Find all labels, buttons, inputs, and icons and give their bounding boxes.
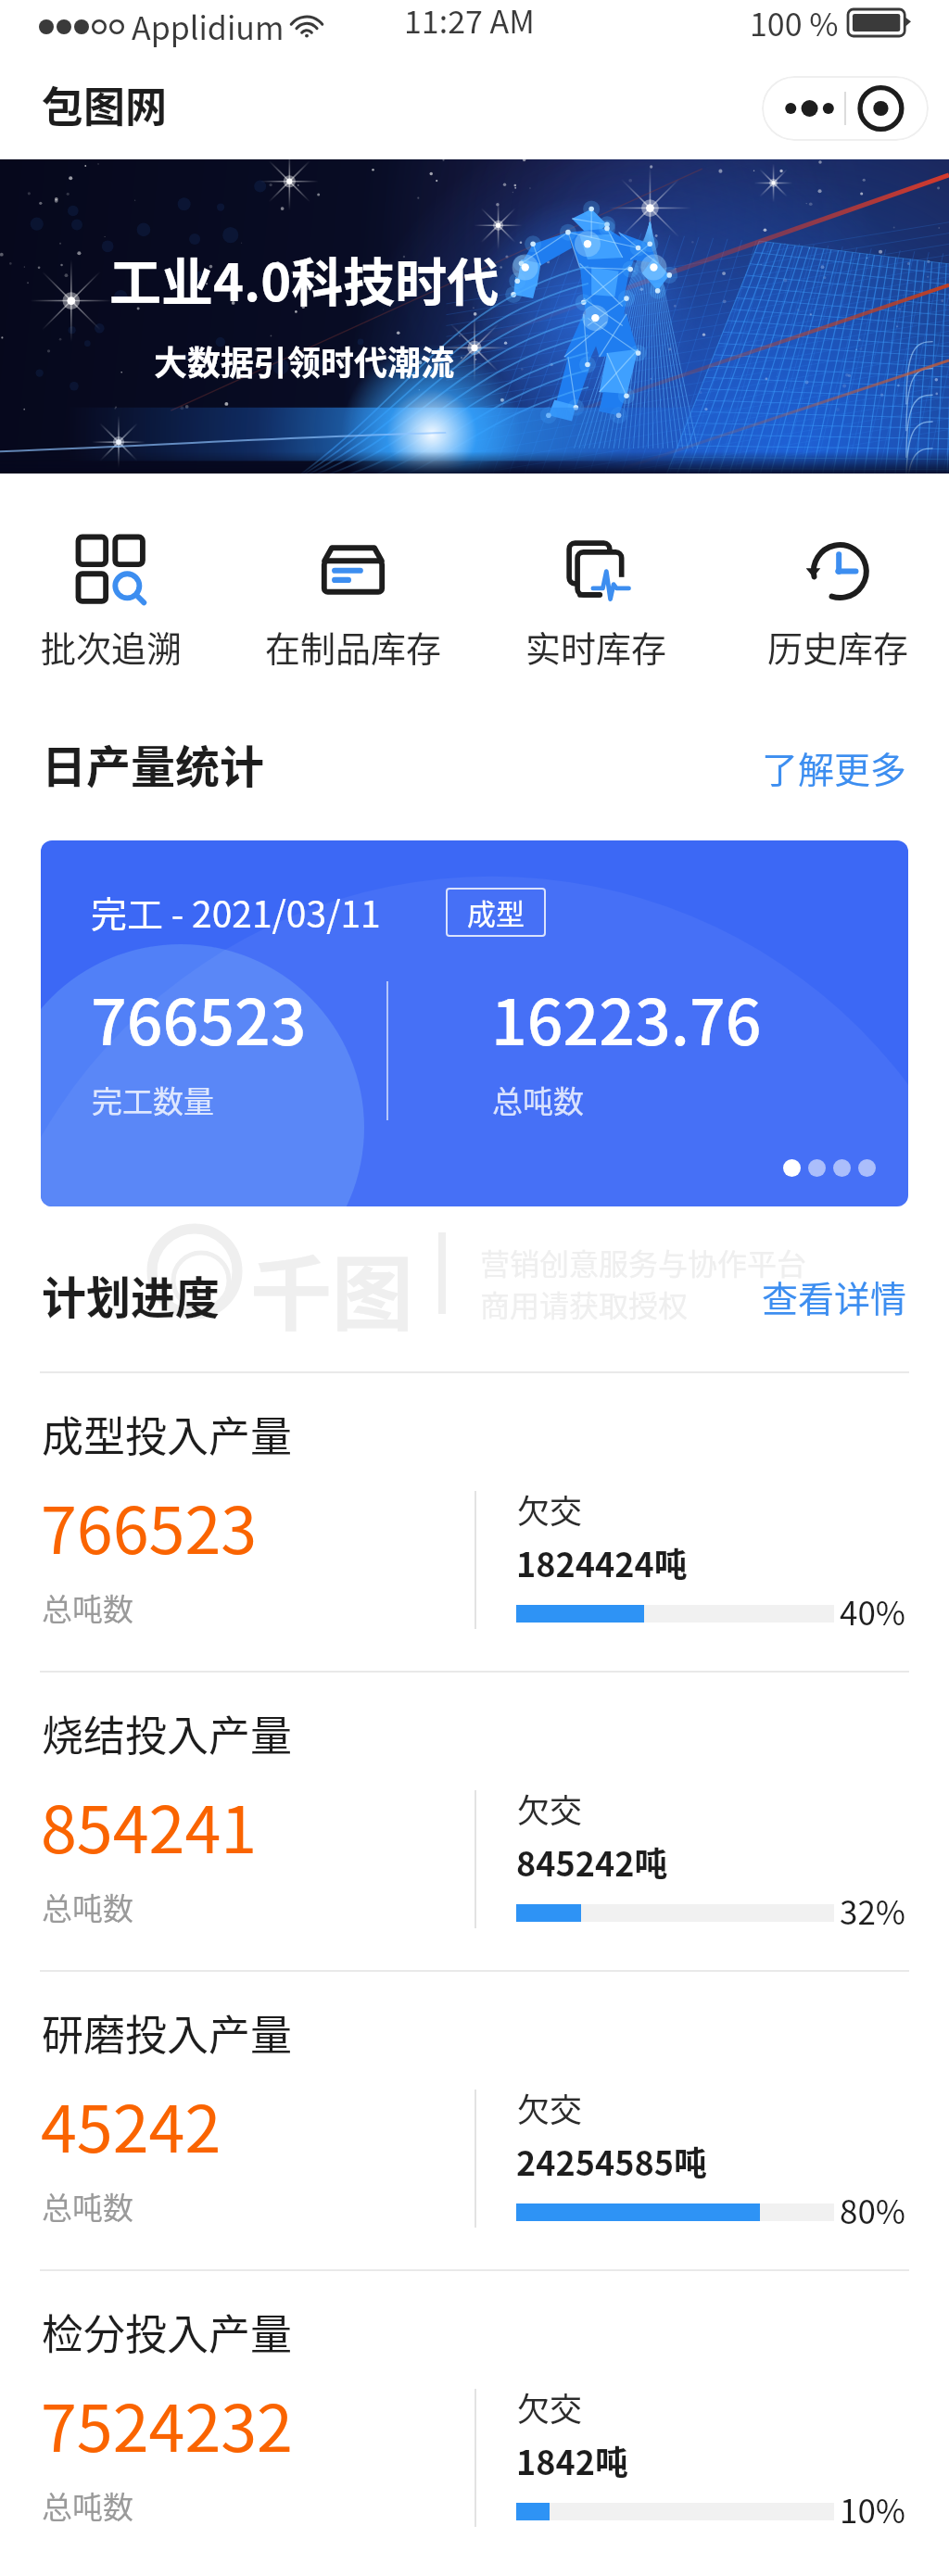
staticText: 1842吨 [516, 2436, 628, 2484]
staticText: Applidium [132, 4, 285, 49]
button[interactable]: 完工 - 2021/03/11 [41, 840, 908, 1206]
button[interactable]: 研磨投入产量 [0, 1970, 949, 2269]
staticText: 商用请获取授权 [480, 1282, 689, 1325]
staticText: 45242 [41, 2077, 221, 2171]
staticText: 包图网 [42, 74, 168, 134]
staticText: 845242吨 [516, 1837, 668, 1886]
staticText: 批次追溯 [41, 621, 183, 672]
staticText: 工业4.0科技时代 [109, 241, 500, 316]
button[interactable]: 了解更多 [740, 728, 949, 810]
button[interactable]: 在制品库存 [234, 474, 472, 697]
staticText: 完工 - 2021/03/11 [91, 886, 381, 938]
staticText: 766523 [91, 972, 307, 1063]
staticText: 欠交 [517, 1485, 583, 1533]
staticText: 历史库存 [767, 621, 909, 672]
staticText: 40% [840, 1587, 906, 1635]
button[interactable]: 烧结投入产量 [0, 1671, 949, 1970]
staticText: 营销创意服务与协作平台 [480, 1241, 807, 1283]
staticText: 总吨数 [42, 1885, 133, 1929]
staticText: 欠交 [517, 1785, 583, 1832]
staticText: 日产量统计 [42, 731, 265, 796]
staticText: 完工数量 [92, 1078, 214, 1122]
staticText: 10% [840, 2485, 906, 2532]
staticText: 766523 [41, 1479, 258, 1572]
button[interactable]: 批次追溯 [0, 474, 230, 697]
button[interactable]: More options and close [762, 76, 929, 141]
staticText: 11:27 AM [404, 0, 535, 43]
staticText: 总吨数 [42, 2483, 133, 2528]
staticText: 研磨投入产量 [42, 2002, 293, 2063]
staticText: 成型投入产量 [42, 1404, 293, 1464]
button[interactable]: 查看详情 [740, 1206, 949, 1337]
staticText: 烧结投入产量 [42, 1703, 293, 1763]
staticText: 检分投入产量 [42, 2302, 293, 2362]
button[interactable]: 实时库存 [477, 474, 715, 697]
staticText: 总吨数 [492, 1078, 584, 1122]
staticText: 欠交 [517, 2383, 583, 2431]
staticText: 实时库存 [525, 621, 667, 672]
staticText: 大数据引领时代潮流 [154, 336, 455, 385]
staticText: 32% [840, 1887, 906, 1934]
staticText: 100 % [750, 0, 839, 45]
staticText: 24254585吨 [516, 2137, 707, 2185]
button[interactable]: 历史库存 [719, 474, 949, 697]
staticText: 在制品库存 [265, 621, 442, 672]
staticText: 总吨数 [42, 1585, 133, 1630]
staticText: 计划进度 [42, 1262, 221, 1327]
staticText: 7524232 [41, 2377, 293, 2470]
staticText: 成型 [467, 891, 525, 933]
button[interactable]: 成型投入产量 [0, 1371, 949, 1671]
staticText: 总吨数 [42, 2184, 133, 2229]
staticText: 80% [840, 2186, 906, 2233]
staticText: 欠交 [517, 2084, 583, 2131]
staticText: 千图 [250, 1229, 414, 1346]
staticText: 1824424吨 [516, 1538, 688, 1586]
staticText: 854241 [41, 1778, 258, 1872]
button[interactable]: 工业4.0科技时代 [0, 159, 949, 474]
button[interactable]: 检分投入产量 [0, 2269, 949, 2569]
staticText: 16223.76 [491, 972, 762, 1063]
